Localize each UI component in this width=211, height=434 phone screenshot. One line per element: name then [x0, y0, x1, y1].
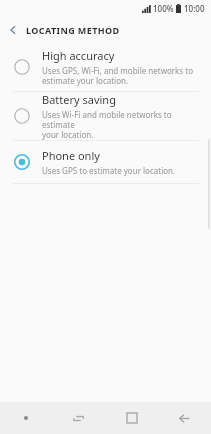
staticText: Uses Wi-Fi and mobile networks to estima…: [42, 109, 199, 140]
button[interactable]: Recents: [52, 402, 105, 434]
button[interactable]: Phone only: [0, 141, 211, 183]
staticText: High accuracy: [42, 48, 115, 63]
staticText: 100%: [153, 3, 174, 14]
staticText: Uses GPS to estimate your location.: [42, 165, 176, 176]
staticText: Battery saving: [42, 92, 116, 107]
staticText: LOCATING METHOD: [26, 24, 120, 36]
button[interactable]: Back: [0, 16, 26, 43]
button[interactable]: Battery saving: [0, 92, 211, 140]
staticText: Uses GPS, Wi-Fi, and mobile networks to …: [42, 65, 193, 86]
staticText: Phone only: [42, 148, 100, 163]
button[interactable]: High accuracy: [0, 43, 211, 91]
button[interactable]: Back: [158, 402, 211, 434]
button[interactable]: Home: [105, 402, 158, 434]
staticText: 10:00: [184, 3, 205, 14]
